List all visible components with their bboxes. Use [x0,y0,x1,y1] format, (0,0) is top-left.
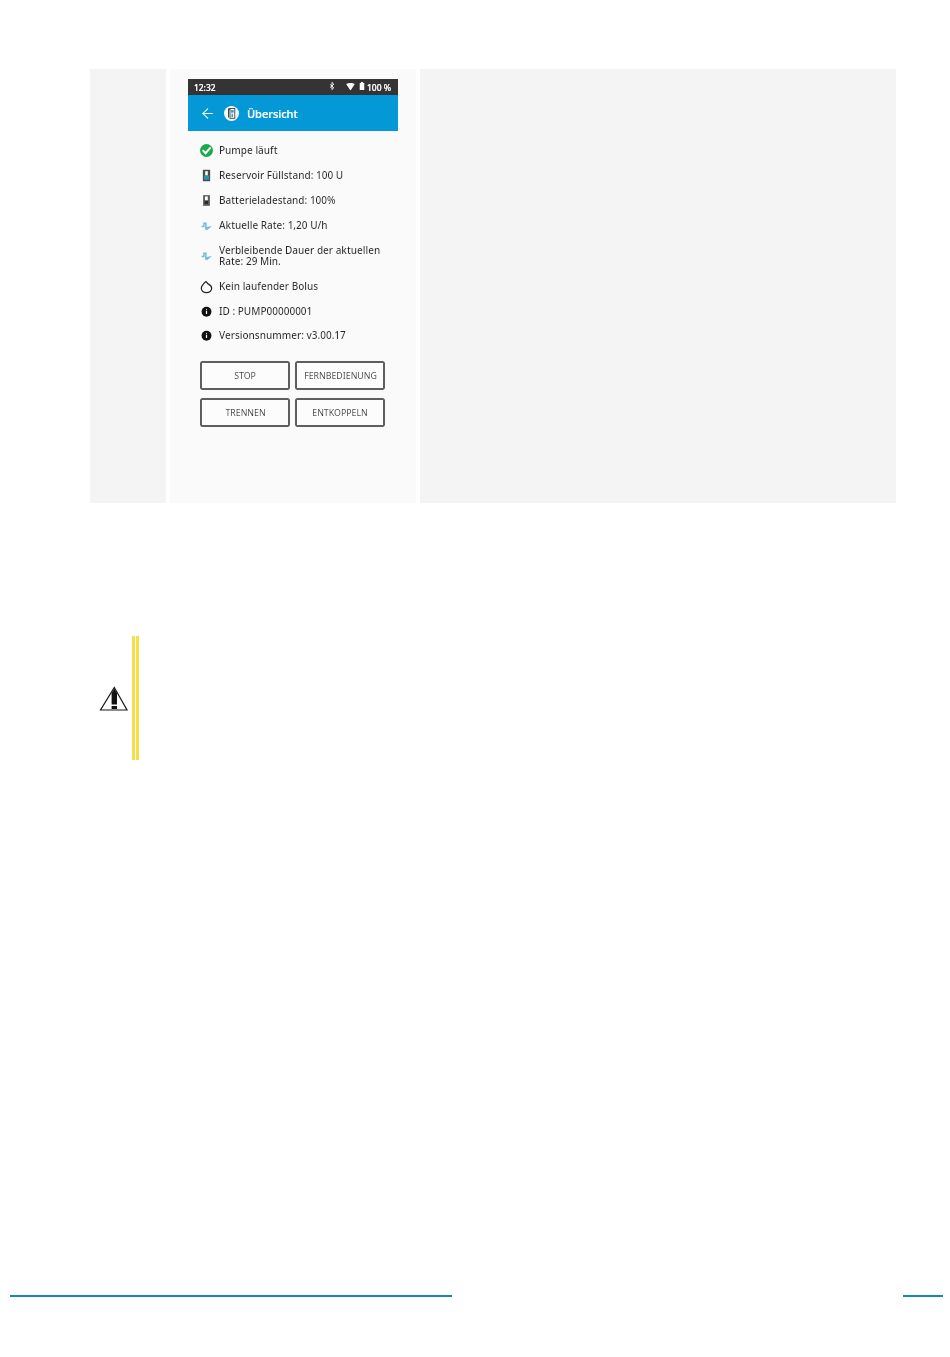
button[interactable]: Verbleibende Dauer der aktuellen Rate: 2… [200,243,392,267]
button[interactable]: Pumpe [221,101,287,125]
button[interactable]: STOP [200,361,290,390]
staticText: ENTKOPPELN [312,407,368,419]
staticText: TRENNEN [225,407,266,419]
other: Pumpe [224,106,239,121]
staticText: ID : PUMP00000001 [219,304,313,318]
button[interactable]: Pumpe läuft [200,141,392,159]
staticText: Übersicht [247,106,298,121]
staticText: FERNBEDIENUNG [304,370,377,382]
button[interactable]: Aktuelle Rate: 1,20 U/h [200,216,392,234]
staticText: Versionsnummer: v3.00.17 [219,328,346,342]
staticText: STOP [234,370,256,382]
button[interactable]: ENTKOPPELN [295,398,385,427]
staticText: Verbleibende Dauer der aktuellen Rate: 2… [219,243,381,267]
button[interactable]: TRENNEN [200,398,290,427]
button[interactable]: FERNBEDIENUNG [295,361,385,390]
staticText: Pumpe läuft [219,143,278,157]
button[interactable]: Versionsnummer: v3.00.17 [200,326,392,344]
staticText: Aktuelle Rate: 1,20 U/h [219,218,328,232]
button[interactable]: Zurück [195,101,219,125]
staticText: Reservoir Füllstand: 100 U [219,168,344,182]
button[interactable]: Kein laufender Bolus [200,277,392,295]
staticText: 100 % [367,82,392,94]
button[interactable]: Batterieladestand: 100% [200,191,392,209]
staticText: Batterieladestand: 100% [219,193,336,207]
button[interactable]: ID : PUMP00000001 [200,302,392,320]
staticText: Kein laufender Bolus [219,279,319,293]
staticText: 12:32 [194,82,216,93]
button[interactable]: Reservoir Füllstand: 100 U [200,166,392,184]
